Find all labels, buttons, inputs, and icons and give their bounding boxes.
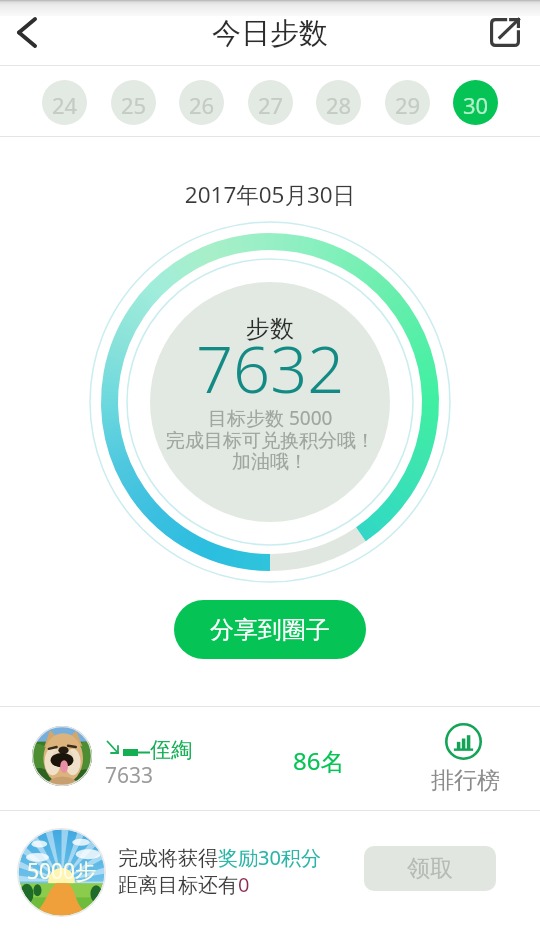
button[interactable]: 30 [453, 80, 498, 125]
staticText: 27 [258, 90, 284, 120]
staticText: 完成目标可兑换积分哦！ [166, 429, 375, 453]
staticText: 侄綯 [150, 737, 192, 763]
staticText: 今日步数 [212, 15, 328, 52]
staticText: 86名 [293, 744, 345, 777]
button[interactable]: 26 [179, 80, 224, 125]
button[interactable]: 侄綯 [0, 707, 540, 810]
button[interactable]: 领取 [364, 846, 496, 891]
button[interactable]: 24 [42, 80, 87, 125]
staticText: 步数 [246, 314, 294, 344]
button[interactable]: 分享到圈子 [174, 600, 366, 659]
staticText: 7633 [105, 761, 154, 790]
staticText: 目标步数 5000 [208, 405, 333, 431]
button[interactable]: Share [468, 0, 540, 65]
staticText: 24 [52, 90, 78, 120]
staticText: 加油哦！ [232, 450, 308, 474]
staticText: 29 [395, 90, 421, 120]
staticText: 7632 [196, 324, 345, 413]
staticText: 完成将获得奖励30积分 [118, 844, 321, 871]
staticText: 5000步 [27, 857, 97, 886]
staticText: 领取 [407, 854, 453, 883]
button[interactable]: 25 [111, 80, 156, 125]
staticText: 分享到圈子 [210, 615, 330, 645]
button[interactable]: Back [0, 0, 54, 65]
staticText: 26 [189, 90, 215, 120]
staticText: 30 [463, 90, 489, 120]
button[interactable]: 27 [248, 80, 293, 125]
button[interactable]: 29 [385, 80, 430, 125]
staticText: 2017年05月30日 [0, 179, 540, 210]
staticText: 距离目标还有0 [118, 871, 250, 898]
staticText: 25 [121, 90, 147, 120]
staticText: 28 [326, 90, 352, 120]
staticText: 排行榜 [431, 766, 500, 795]
button[interactable]: 28 [316, 80, 361, 125]
